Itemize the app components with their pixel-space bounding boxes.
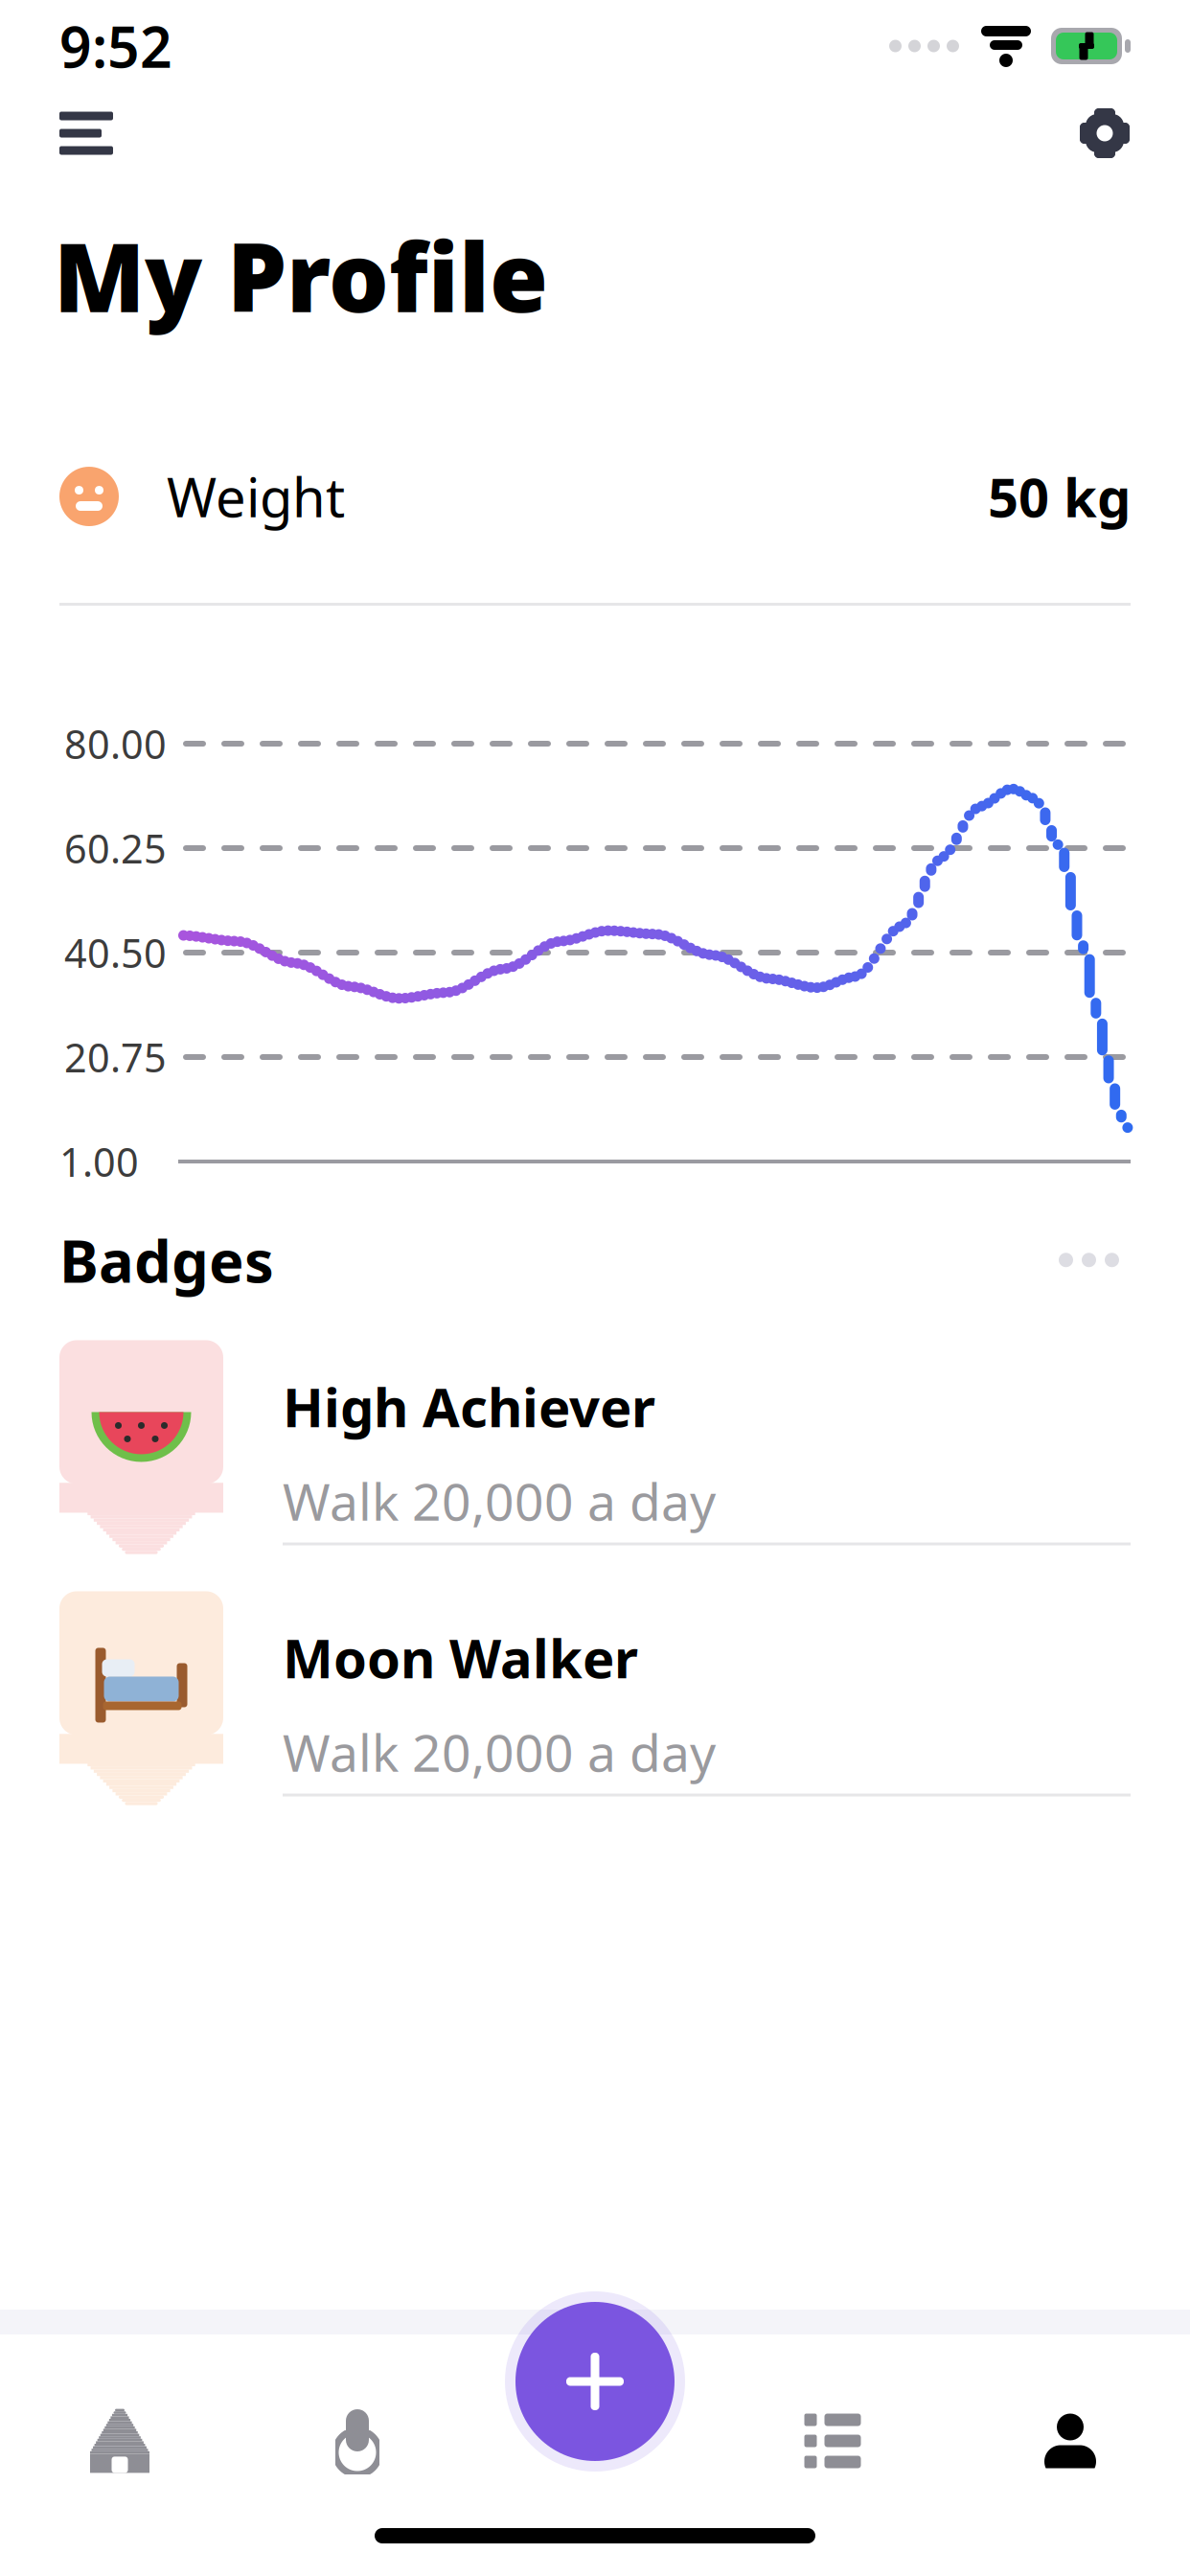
staticText: My Profile bbox=[54, 213, 548, 338]
staticText: 80.00 bbox=[64, 717, 167, 770]
button[interactable]: Menu bbox=[50, 102, 123, 164]
staticText: 20.75 bbox=[64, 1031, 167, 1083]
button[interactable]: More badge options bbox=[1047, 1241, 1131, 1279]
staticText: 1.00 bbox=[59, 1135, 139, 1188]
staticText: Moon Walker bbox=[283, 1622, 638, 1693]
staticText: Walk 20,000 a day bbox=[283, 1467, 716, 1535]
button[interactable]: High Achiever bbox=[0, 1341, 1190, 1539]
staticText: 60.25 bbox=[64, 822, 167, 874]
button[interactable]: Home bbox=[1, 2379, 239, 2503]
staticText: 50 kg bbox=[988, 461, 1131, 532]
button[interactable]: Add entry bbox=[505, 2291, 685, 2472]
button[interactable]: Voice input bbox=[239, 2379, 476, 2503]
button[interactable]: Activity list bbox=[714, 2379, 951, 2503]
staticText: High Achiever bbox=[283, 1371, 655, 1442]
button[interactable]: Moon Walker bbox=[0, 1592, 1190, 1790]
button[interactable]: Weight bbox=[0, 444, 1190, 606]
button[interactable]: Profile bbox=[951, 2379, 1189, 2503]
staticText: Weight bbox=[167, 461, 345, 532]
staticText: 9:52 bbox=[59, 9, 172, 83]
staticText: Badges bbox=[59, 1221, 274, 1299]
staticText: Walk 20,000 a day bbox=[283, 1718, 716, 1786]
button[interactable]: Settings bbox=[1069, 98, 1140, 169]
staticText: 40.50 bbox=[64, 926, 167, 979]
